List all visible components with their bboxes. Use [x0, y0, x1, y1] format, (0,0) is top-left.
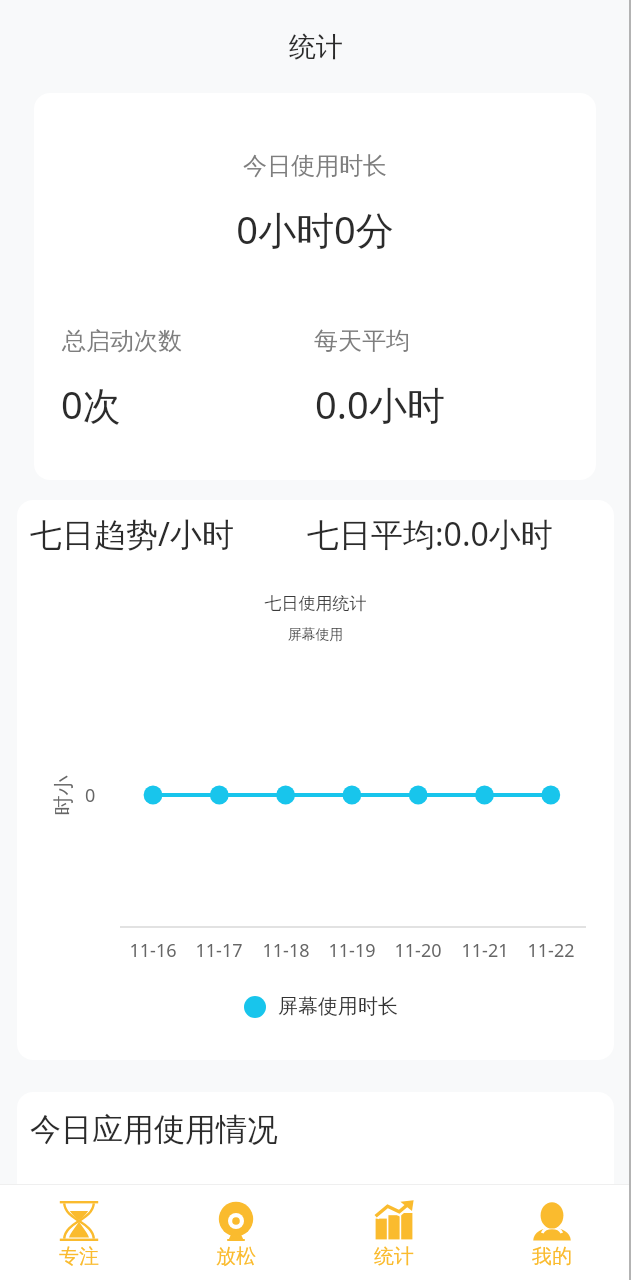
staticText: 11-16	[118, 938, 188, 963]
staticText: 七日趋势/小时	[30, 512, 234, 556]
button[interactable]: 放松	[157, 1185, 315, 1280]
staticText: 11-19	[317, 938, 387, 963]
button[interactable]: 专注	[0, 1185, 157, 1280]
other: 放松	[216, 1201, 256, 1241]
button[interactable]: 我的	[473, 1185, 631, 1280]
staticText: 总启动次数	[62, 326, 182, 356]
staticText: 今日应用使用情况	[30, 1110, 278, 1149]
staticText: 0.0小时	[315, 378, 445, 430]
staticText: 每天平均	[314, 326, 410, 356]
staticText: 11-18	[251, 938, 321, 963]
staticText: 屏幕使用时长	[278, 994, 398, 1019]
other: 我的	[532, 1201, 572, 1241]
other: 专注	[59, 1201, 99, 1241]
button[interactable]: 统计	[315, 1185, 473, 1280]
staticText: 放松	[216, 1244, 256, 1269]
staticText: 0次	[61, 378, 121, 430]
staticText: 11-21	[450, 938, 520, 963]
staticText: 统计	[289, 30, 343, 64]
staticText: 专注	[59, 1244, 99, 1269]
staticText: 今日使用时长	[34, 151, 596, 181]
staticText: 11-22	[516, 938, 586, 963]
staticText: 七日使用统计	[17, 593, 614, 614]
staticText: 0	[85, 783, 96, 808]
staticText: 11-20	[383, 938, 453, 963]
staticText: 0小时0分	[34, 203, 596, 255]
staticText: 屏幕使用	[17, 626, 614, 644]
other: 统计	[374, 1201, 414, 1241]
staticText: 时小	[50, 775, 75, 815]
staticText: 统计	[374, 1244, 414, 1269]
staticText: 11-17	[184, 938, 254, 963]
staticText: 七日平均:0.0小时	[307, 512, 553, 556]
staticText: 我的	[532, 1244, 572, 1269]
